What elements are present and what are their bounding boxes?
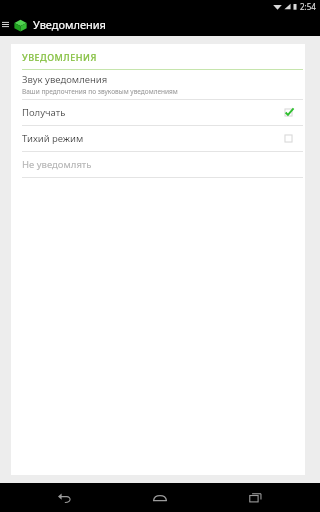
button[interactable]: Back <box>35 483 95 512</box>
staticText: Ваши предпочтения по звуковым уведомлени… <box>22 87 178 96</box>
staticText: Уведомления <box>33 17 106 32</box>
button[interactable]: Open navigation drawer <box>0 13 11 36</box>
button[interactable]: Получать <box>11 100 305 125</box>
staticText: Тихий режим <box>22 132 84 145</box>
staticText: Получать <box>22 106 66 119</box>
button[interactable]: Звук уведомления <box>11 70 305 99</box>
staticText: УВЕДОМЛЕНИЯ <box>22 51 97 63</box>
staticText: Не уведомлять <box>22 158 92 171</box>
staticText: 2:54 <box>300 1 316 12</box>
button[interactable]: App icon <box>11 16 29 34</box>
button[interactable]: Home <box>130 483 190 512</box>
button[interactable]: Не уведомлять <box>11 152 305 177</box>
button[interactable]: Recent apps <box>225 483 285 512</box>
button[interactable]: Тихий режим <box>11 126 305 151</box>
staticText: Звук уведомления <box>22 73 108 86</box>
